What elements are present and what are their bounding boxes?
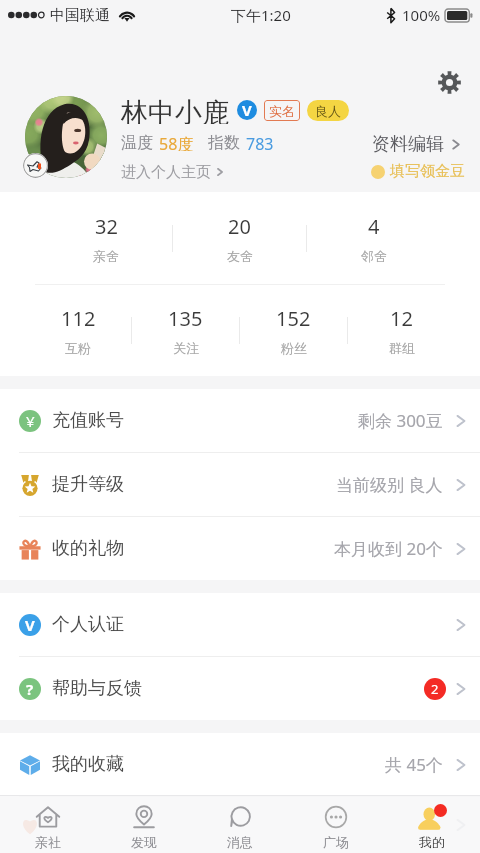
staticText: ? — [26, 679, 34, 699]
button[interactable]: 20 — [173, 192, 306, 284]
staticText: 广场 — [323, 834, 349, 850]
staticText: 消息 — [227, 834, 253, 850]
staticText: 32 — [95, 213, 118, 240]
button[interactable]: 152 — [240, 285, 347, 376]
staticText: 共 45个 — [385, 753, 443, 776]
button[interactable]: 我的 — [384, 796, 480, 853]
button[interactable]: ¥ — [0, 389, 480, 453]
staticText: 152 — [276, 305, 311, 332]
button[interactable]: Settings — [429, 62, 469, 102]
staticText: 温度 — [121, 133, 153, 151]
staticText: 亲社 — [35, 834, 61, 850]
staticText: 个人认证 — [52, 613, 124, 636]
button[interactable]: ? — [0, 657, 480, 720]
staticText: 100% — [402, 5, 441, 25]
staticText: V — [242, 100, 252, 120]
staticText: 我的收藏 — [52, 753, 124, 776]
staticText: V — [25, 615, 35, 635]
staticText: 进入个人主页 — [121, 163, 211, 181]
staticText: 剩余 300豆 — [358, 409, 443, 432]
staticText: 当前级别 良人 — [336, 473, 443, 496]
staticText: 亲舍 — [93, 248, 119, 264]
button[interactable]: V — [0, 593, 480, 657]
staticText: 友舍 — [227, 248, 253, 264]
staticText: 关注 — [173, 340, 199, 356]
staticText: 互粉 — [65, 340, 91, 356]
staticText: 12 — [390, 305, 413, 332]
button[interactable]: 亲社 — [0, 796, 96, 853]
button[interactable]: 资料编辑 — [372, 133, 460, 155]
staticText: 本月收到 20个 — [334, 537, 443, 560]
staticText: 20 — [228, 213, 251, 240]
staticText: 783 — [246, 133, 274, 151]
staticText: 我的 — [419, 834, 445, 850]
button[interactable]: 填写领金豆 — [371, 162, 465, 181]
staticText: 指数 — [208, 133, 240, 151]
button[interactable]: 广场 — [288, 796, 384, 853]
staticText: 实名 — [269, 103, 295, 119]
button[interactable] — [25, 96, 107, 178]
staticText: 135 — [168, 305, 203, 332]
staticText: 4 — [368, 213, 380, 240]
button[interactable]: 32 — [40, 192, 172, 284]
staticText: 群组 — [389, 340, 415, 356]
button[interactable]: 进入个人主页 — [121, 163, 223, 181]
button[interactable]: 提升等级 — [0, 453, 480, 517]
button[interactable]: 4 — [307, 192, 440, 284]
staticText: 2 — [431, 680, 439, 698]
staticText: 邻舍 — [361, 248, 387, 264]
staticText: 发现 — [131, 834, 157, 850]
staticText: 资料编辑 — [372, 133, 444, 155]
staticText: 帮助与反馈 — [52, 677, 142, 700]
staticText: 提升等级 — [52, 473, 124, 496]
button[interactable]: 135 — [132, 285, 239, 376]
button[interactable]: 收的礼物 — [0, 517, 480, 580]
staticText: 中国联通 — [50, 6, 110, 25]
button[interactable]: 12 — [348, 285, 455, 376]
staticText: 林中小鹿 — [121, 96, 229, 124]
staticText: 58度 — [159, 133, 194, 151]
staticText: 下午1:20 — [231, 5, 291, 25]
button[interactable]: 112 — [25, 285, 131, 376]
button[interactable]: 消息 — [192, 796, 288, 853]
button[interactable] — [0, 797, 480, 853]
staticText: 填写领金豆 — [390, 162, 465, 181]
staticText: 112 — [61, 305, 96, 332]
staticText: 粉丝 — [281, 340, 307, 356]
staticText: 良人 — [315, 103, 341, 119]
button[interactable]: 发现 — [96, 796, 192, 853]
staticText: 充值账号 — [52, 409, 124, 432]
button[interactable]: 我的收藏 — [0, 733, 480, 797]
staticText: 收的礼物 — [52, 537, 124, 560]
staticText: ¥ — [26, 411, 35, 431]
